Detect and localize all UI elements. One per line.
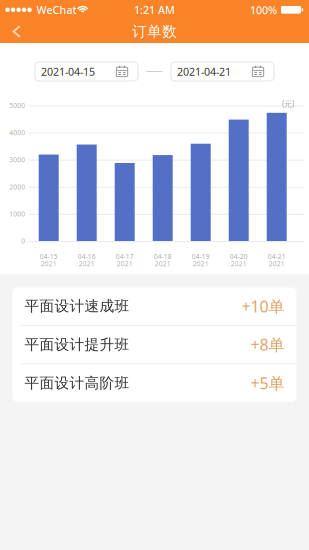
staticText: 04-21 xyxy=(268,252,286,261)
staticText: 平面设计速成班 xyxy=(24,297,129,315)
staticText: 2021 xyxy=(79,259,95,268)
staticText: 2021 xyxy=(231,259,247,268)
staticText: 4000 xyxy=(9,128,25,137)
staticText: 04-19 xyxy=(192,252,210,261)
staticText: 2021 xyxy=(269,259,285,268)
staticText: 04-17 xyxy=(116,252,134,261)
button[interactable]: 平面设计提升班 xyxy=(12,326,296,363)
staticText: 2021 xyxy=(41,259,57,268)
staticText: +8单 xyxy=(250,334,284,355)
staticText: 04-20 xyxy=(230,252,248,261)
button[interactable]: Back xyxy=(0,20,26,43)
staticText: 2021 xyxy=(117,259,133,268)
staticText: 0 xyxy=(21,237,25,245)
staticText: 1:21 AM xyxy=(134,3,175,17)
staticText: 平面设计提升班 xyxy=(24,336,129,354)
staticText: 5000 xyxy=(9,101,25,110)
button[interactable]: 平面设计速成班 xyxy=(12,287,296,325)
staticText: 04-18 xyxy=(154,252,172,261)
button[interactable]: 平面设计高阶班 xyxy=(12,364,296,402)
staticText: 100% xyxy=(250,3,277,17)
staticText: (元) xyxy=(282,99,294,109)
staticText: WeChat xyxy=(37,3,77,17)
staticText: 2021-04-21 xyxy=(177,64,231,79)
staticText: +10单 xyxy=(241,296,284,317)
staticText: 1000 xyxy=(9,209,25,218)
staticText: 2021 xyxy=(193,259,209,268)
staticText: 2021-04-15 xyxy=(41,64,95,79)
staticText: +5单 xyxy=(250,372,284,394)
staticText: 2021 xyxy=(155,259,171,268)
staticText: 04-15 xyxy=(40,252,58,261)
staticText: 订单数 xyxy=(132,22,177,40)
staticText: 3000 xyxy=(9,155,25,164)
button[interactable]: 2021-04-21 xyxy=(171,62,274,81)
staticText: 平面设计高阶班 xyxy=(24,374,129,392)
staticText: 2000 xyxy=(9,182,25,191)
staticText: 04-16 xyxy=(78,252,96,261)
button[interactable]: 2021-04-15 xyxy=(35,62,138,81)
